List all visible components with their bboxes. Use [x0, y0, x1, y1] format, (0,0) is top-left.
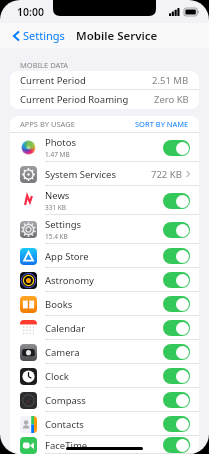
staticText: Photos	[45, 136, 77, 149]
staticText: 1.47 MB	[45, 150, 70, 159]
button[interactable]: Camera	[10, 340, 199, 364]
button[interactable]: Contacts	[10, 412, 199, 436]
button[interactable]: Toggle mobile data	[163, 140, 190, 156]
button[interactable]: System Services	[10, 162, 199, 186]
staticText: Clock	[45, 370, 69, 383]
staticText: APPS BY USAGE	[20, 119, 75, 129]
button[interactable]: Toggle mobile data	[163, 222, 190, 238]
button[interactable]: Calendar	[10, 316, 199, 340]
staticText: Mobile Service	[76, 28, 158, 44]
staticText: 331 KB	[45, 203, 67, 212]
button[interactable]: App Store	[10, 244, 199, 268]
staticText: Compass	[45, 394, 86, 407]
staticText: SORT BY NAME	[135, 119, 189, 129]
staticText: Current Period	[20, 74, 86, 87]
button[interactable]: Toggle mobile data	[163, 368, 190, 384]
staticText: 2.51 MB	[152, 74, 189, 87]
button[interactable]: Toggle mobile data	[163, 193, 190, 209]
button[interactable]: News	[10, 186, 199, 215]
button[interactable]: FaceTime	[10, 436, 199, 454]
button[interactable]: Photos	[10, 133, 199, 162]
staticText: 15.4 KB	[45, 232, 68, 241]
staticText: Zero KB	[154, 93, 189, 106]
staticText: App Store	[45, 250, 89, 263]
staticText: 10:00	[17, 5, 44, 19]
staticText: System Services	[45, 168, 116, 181]
button[interactable]: Compass	[10, 388, 199, 412]
button[interactable]: SORT BY NAME	[135, 119, 199, 129]
button[interactable]: Astronomy	[10, 268, 199, 292]
staticText: 722 KB	[151, 168, 182, 181]
button[interactable]: Toggle mobile data	[163, 320, 190, 336]
staticText: Settings	[45, 218, 82, 231]
staticText: Books	[45, 298, 73, 311]
staticText: Settings	[23, 28, 65, 43]
staticText: MOBILE DATA	[20, 60, 69, 70]
button[interactable]: Current Period	[10, 71, 199, 90]
staticText: Contacts	[45, 418, 84, 431]
staticText: Astronomy	[45, 274, 94, 287]
staticText: Current Period Roaming	[20, 93, 129, 106]
staticText: Camera	[45, 346, 80, 359]
staticText: FaceTime	[45, 439, 88, 452]
button[interactable]: Clock	[10, 364, 199, 388]
button[interactable]: Toggle mobile data	[163, 272, 190, 288]
button[interactable]: Settings	[10, 215, 199, 244]
button[interactable]: Toggle mobile data	[163, 416, 190, 432]
button[interactable]: Settings	[11, 26, 67, 45]
staticText: Calendar	[45, 322, 86, 335]
staticText: News	[45, 189, 70, 202]
button[interactable]: Current Period Roaming	[10, 90, 199, 109]
button[interactable]: Toggle mobile data	[163, 344, 190, 360]
button[interactable]: Toggle mobile data	[163, 296, 190, 312]
button[interactable]: Toggle mobile data	[163, 248, 190, 264]
button[interactable]: Toggle mobile data	[163, 437, 190, 453]
button[interactable]: Books	[10, 292, 199, 316]
button[interactable]: Toggle mobile data	[163, 392, 190, 408]
